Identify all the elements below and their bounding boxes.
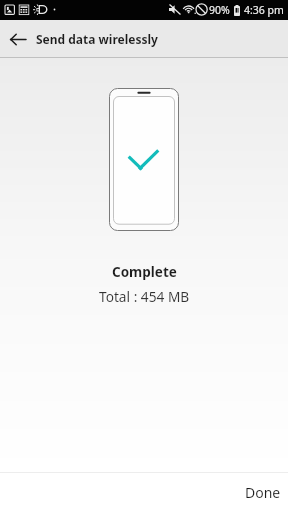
staticText: 90% [209, 3, 230, 17]
staticText: Complete [112, 263, 177, 281]
staticText: Total : 454 MB [99, 287, 190, 306]
staticText: Done [245, 483, 281, 502]
staticText: Send data wirelessly [36, 31, 158, 47]
button[interactable]: Done [238, 473, 288, 512]
staticText: 4:36 pm [244, 3, 284, 17]
button[interactable]: Navigate up [0, 21, 36, 57]
